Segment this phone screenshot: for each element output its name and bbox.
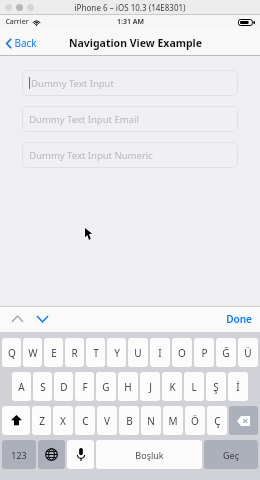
staticText: K bbox=[169, 380, 176, 394]
button[interactable]: Y bbox=[107, 338, 126, 367]
button[interactable]: Dummy Text Input bbox=[22, 70, 238, 96]
button[interactable]: R bbox=[65, 338, 84, 367]
button[interactable]: T bbox=[86, 338, 105, 367]
staticText: İ bbox=[236, 380, 240, 394]
staticText: L bbox=[191, 380, 197, 394]
button[interactable]: Boşluk bbox=[96, 440, 202, 469]
button[interactable]: E bbox=[44, 338, 63, 367]
button[interactable]: O bbox=[172, 338, 192, 367]
staticText: Back bbox=[14, 36, 37, 50]
staticText: Done bbox=[226, 312, 252, 326]
staticText: S bbox=[40, 380, 46, 394]
staticText: I bbox=[158, 346, 162, 360]
staticText: Carrier bbox=[5, 17, 29, 27]
staticText: 123 bbox=[11, 449, 27, 461]
staticText: O bbox=[178, 346, 186, 360]
button[interactable]: Previous field bbox=[7, 309, 27, 329]
staticText: R bbox=[71, 346, 78, 360]
button[interactable]: F bbox=[75, 372, 94, 401]
staticText: 1:31 AM bbox=[117, 17, 144, 27]
button[interactable]: Close bbox=[5, 4, 12, 11]
button[interactable]: L bbox=[184, 372, 204, 401]
staticText: B bbox=[126, 414, 133, 428]
staticText: Navigation View Example bbox=[69, 36, 202, 50]
button[interactable]: Ğ bbox=[216, 338, 236, 367]
staticText: A bbox=[18, 380, 25, 394]
staticText: Z bbox=[39, 414, 45, 428]
button[interactable]: U bbox=[128, 338, 148, 367]
button[interactable]: Minimize bbox=[16, 4, 23, 11]
button[interactable]: K bbox=[162, 372, 182, 401]
button[interactable]: Q bbox=[2, 338, 21, 367]
button[interactable]: Zoom bbox=[27, 4, 34, 11]
button[interactable]: Z bbox=[32, 406, 51, 435]
staticText: Y bbox=[114, 346, 120, 360]
staticText: H bbox=[124, 380, 132, 394]
staticText: Ç bbox=[214, 414, 221, 428]
staticText: Boşluk bbox=[135, 449, 164, 461]
staticText: Ü bbox=[244, 346, 252, 360]
staticText: Ö bbox=[191, 414, 199, 428]
button[interactable]: S bbox=[33, 372, 52, 401]
staticText: J bbox=[149, 380, 152, 394]
staticText: iPhone 6 – iOS 10.3 (14E8301) bbox=[74, 2, 186, 13]
button[interactable]: Next keyboard bbox=[38, 440, 65, 469]
button[interactable]: V bbox=[97, 406, 117, 435]
staticText: P bbox=[201, 346, 208, 360]
button[interactable]: M bbox=[163, 406, 183, 435]
button[interactable]: Dictation bbox=[67, 440, 94, 469]
button[interactable]: D bbox=[54, 372, 73, 401]
button[interactable]: N bbox=[141, 406, 161, 435]
staticText: Geç bbox=[223, 449, 239, 461]
button[interactable]: H bbox=[118, 372, 138, 401]
button[interactable]: G bbox=[96, 372, 116, 401]
staticText: G bbox=[102, 380, 110, 394]
button[interactable]: İ bbox=[228, 372, 248, 401]
staticText: Q bbox=[8, 346, 16, 360]
button[interactable]: A bbox=[12, 372, 31, 401]
staticText: V bbox=[104, 414, 110, 428]
button[interactable]: Shift bbox=[2, 406, 30, 435]
staticText: C bbox=[82, 414, 89, 428]
button[interactable]: Ç bbox=[207, 406, 227, 435]
button[interactable]: P bbox=[194, 338, 214, 367]
button[interactable]: Ö bbox=[185, 406, 205, 435]
staticText: Dummy Text Input bbox=[31, 77, 114, 90]
staticText: Ğ bbox=[222, 346, 230, 360]
button[interactable]: I bbox=[150, 338, 170, 367]
staticText: Dummy Text Input Numeric bbox=[29, 149, 153, 162]
staticText: D bbox=[60, 380, 68, 394]
button[interactable]: Dummy Text Input Numeric bbox=[22, 142, 238, 168]
button[interactable]: X bbox=[53, 406, 73, 435]
button[interactable]: Backspace bbox=[229, 406, 258, 435]
button[interactable]: Back bbox=[3, 32, 40, 54]
button[interactable]: W bbox=[23, 338, 42, 367]
button[interactable]: Done bbox=[218, 307, 260, 331]
staticText: T bbox=[93, 346, 99, 360]
button[interactable]: Ü bbox=[238, 338, 258, 367]
staticText: M bbox=[168, 414, 178, 428]
button[interactable]: Dummy Text Input Email bbox=[22, 106, 238, 132]
staticText: F bbox=[82, 380, 88, 394]
staticText: Ş bbox=[213, 380, 219, 394]
button[interactable]: Next field bbox=[32, 309, 52, 329]
staticText: W bbox=[28, 346, 38, 360]
button[interactable]: 123 bbox=[2, 440, 36, 469]
staticText: E bbox=[51, 346, 57, 360]
button[interactable]: B bbox=[119, 406, 139, 435]
staticText: Dummy Text Input Email bbox=[29, 113, 139, 126]
button[interactable]: Ş bbox=[206, 372, 226, 401]
button[interactable]: Geç bbox=[204, 440, 258, 469]
button[interactable]: C bbox=[75, 406, 95, 435]
staticText: U bbox=[134, 346, 142, 360]
button[interactable]: J bbox=[140, 372, 160, 401]
staticText: N bbox=[147, 414, 155, 428]
staticText: X bbox=[60, 414, 66, 428]
